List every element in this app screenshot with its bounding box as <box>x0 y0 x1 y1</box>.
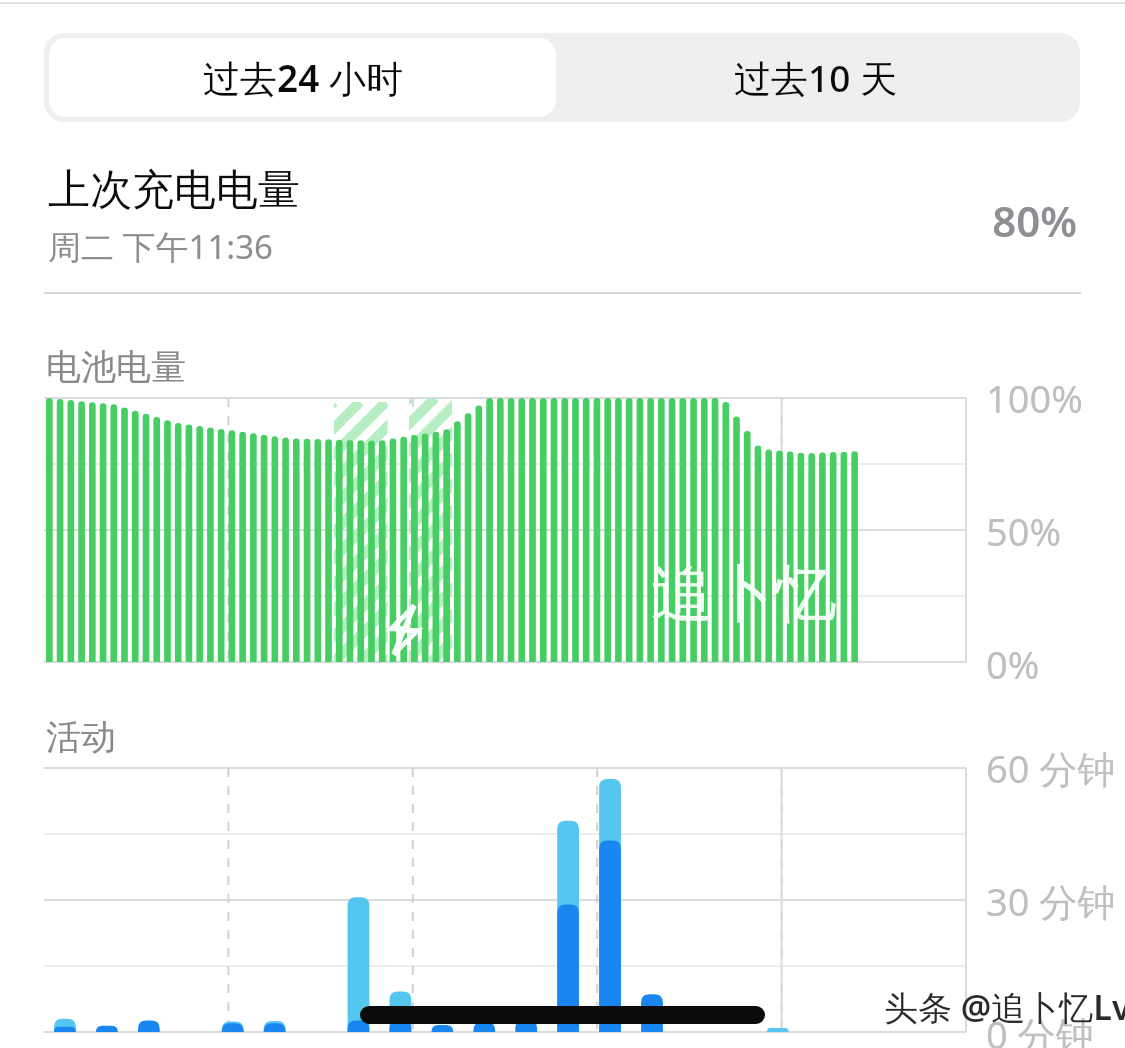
staticText: 0% <box>986 638 1040 690</box>
staticText: 30 分钟 <box>986 875 1116 927</box>
staticText: 100% <box>986 372 1083 424</box>
staticText: 过去10 天 <box>734 52 897 103</box>
staticText: 上次充电电量 <box>48 164 300 217</box>
staticText: 80% <box>902 192 1077 252</box>
staticText: 过去24 小时 <box>203 52 403 103</box>
button[interactable]: 过去24 小时 <box>49 38 556 117</box>
button[interactable]: 上次充电电量 <box>44 160 1081 280</box>
staticText: 60 分钟 <box>986 742 1116 794</box>
staticText: 电池电量 <box>46 345 186 389</box>
staticText: 周二 下午11:36 <box>48 224 273 269</box>
staticText: 0 分钟 <box>986 1008 1094 1048</box>
staticText: 50% <box>986 505 1062 557</box>
button[interactable]: 过去10 天 <box>556 38 1075 117</box>
staticText: 头条 @追卜忆Lv <box>884 984 1125 1030</box>
staticText: 追卜忆 <box>651 555 837 633</box>
staticText: 活动 <box>46 715 116 759</box>
